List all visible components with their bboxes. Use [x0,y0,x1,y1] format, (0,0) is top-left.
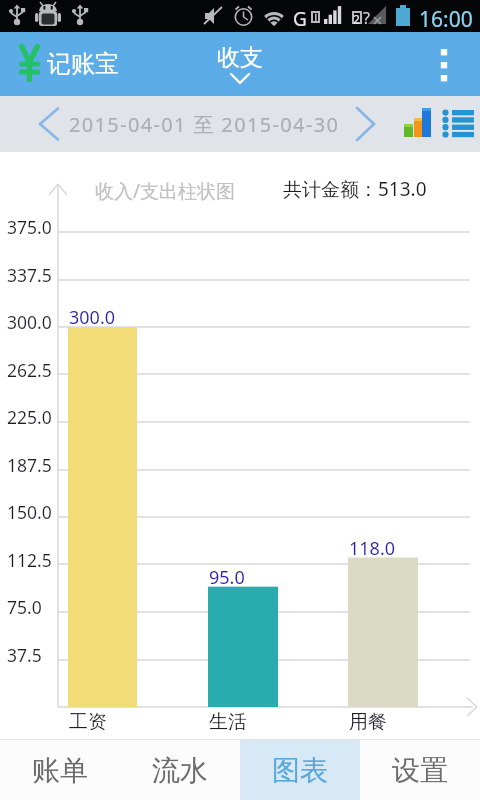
staticText: 37.5 [7,643,42,667]
staticText: 225.0 [7,405,52,429]
staticText: ? [363,7,370,29]
button[interactable]: 流水 [120,740,240,800]
staticText: 2 [353,11,360,27]
staticText: 262.5 [7,358,52,382]
staticText: 图表 [272,753,328,788]
staticText: 用餐 [349,710,387,734]
staticText: 流水 [152,753,208,788]
staticText: 16:00 [419,5,473,34]
staticText: 95.0 [209,565,245,590]
staticText: 账单 [32,753,88,788]
other: Next period [354,106,378,142]
staticText: 设置 [392,753,448,788]
button[interactable]: 收支 [201,43,279,85]
button[interactable]: Chart view [391,96,433,152]
staticText: 187.5 [7,453,52,477]
button[interactable]: 图表 [240,740,360,800]
staticText: 300.0 [7,310,52,334]
staticText: 记账宝 [47,49,119,79]
button[interactable]: More options [408,32,480,96]
button[interactable]: Previous period [38,106,378,142]
button[interactable]: 设置 [360,740,480,800]
staticText: 收支 [217,43,263,72]
staticText: 生活 [209,710,247,734]
staticText: 112.5 [7,548,52,572]
staticText: 118.0 [349,536,396,561]
button[interactable]: 记账宝 [0,42,127,86]
staticText: 337.5 [7,263,52,287]
other: Previous period [38,106,62,142]
staticText: 2015-04-01 至 2015-04-30 [69,111,340,138]
staticText: 150.0 [7,500,52,524]
staticText: 工资 [69,710,107,734]
staticText: G [293,6,307,32]
staticText: 375.0 [7,215,52,239]
staticText: 收入/支出柱状图 [95,178,236,204]
button[interactable]: List view [434,96,478,152]
staticText: 75.0 [7,595,42,619]
staticText: 300.0 [69,305,116,330]
staticText: 共计金额：513.0 [283,176,427,202]
button[interactable]: 账单 [0,740,120,800]
